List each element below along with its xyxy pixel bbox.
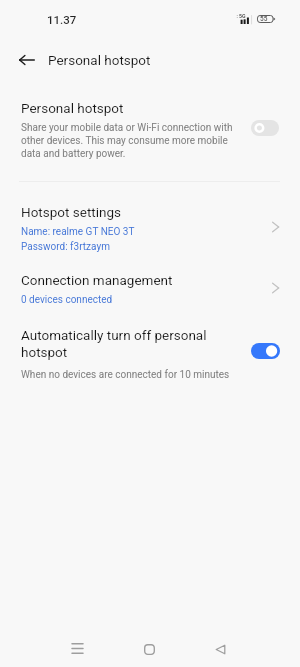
staticText: 55 (260, 15, 268, 23)
button[interactable]: Home (126, 632, 172, 666)
staticText: When no devices are connected for 10 min… (21, 369, 230, 381)
staticText: Name: realme GT NEO 3T (21, 226, 135, 238)
button[interactable]: Personal hotspot toggle (251, 120, 279, 136)
button[interactable]: Back (197, 632, 243, 666)
button[interactable]: Automatically turn off personal hotspot (0, 322, 300, 384)
staticText: 5G (239, 13, 246, 19)
staticText: Share your mobile data or Wi-Fi connecti… (21, 122, 240, 159)
button[interactable]: Personal hotspot (0, 97, 300, 167)
staticText: Automatically turn off personal hotspot (21, 327, 221, 361)
staticText: Personal hotspot (48, 52, 151, 68)
button[interactable]: Hotspot settings (0, 200, 300, 260)
staticText: Personal hotspot (21, 100, 124, 116)
staticText: 0 devices connected (21, 294, 113, 306)
staticText: Connection management (21, 272, 173, 288)
staticText: 11.37 (47, 13, 77, 26)
button[interactable]: Back (9, 42, 45, 78)
button[interactable]: Connection management (0, 268, 300, 314)
button[interactable]: Automatically turn off toggle (251, 343, 280, 359)
staticText: Password: f3rtzaym (21, 241, 110, 253)
button[interactable]: Recent apps (54, 631, 100, 665)
staticText: Hotspot settings (21, 204, 122, 220)
